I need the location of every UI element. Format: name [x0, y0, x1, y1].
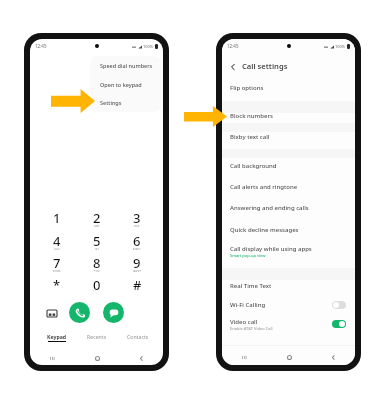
button[interactable]: Back — [119, 350, 163, 365]
button[interactable]: Call alerts and ringtone — [222, 179, 355, 195]
staticText: 8 — [93, 254, 101, 272]
staticText: 0 — [93, 276, 101, 294]
staticText: 100% — [143, 44, 154, 49]
button[interactable]: 4 — [44, 232, 70, 252]
button[interactable]: * — [44, 276, 70, 296]
staticText: 100% — [335, 44, 346, 49]
staticText: GHI — [54, 248, 60, 250]
staticText: + — [96, 292, 98, 294]
staticText: TUV — [94, 270, 100, 272]
button[interactable]: Contacts — [121, 333, 155, 347]
staticText: Quick decline messages — [230, 226, 299, 234]
button[interactable]: 3 — [124, 209, 150, 229]
button[interactable]: 2 — [84, 209, 110, 229]
button[interactable]: Video call — [332, 320, 346, 328]
staticText: WXYZ — [133, 270, 141, 272]
button[interactable]: Back — [311, 349, 355, 365]
staticText: 4 — [53, 232, 61, 250]
button[interactable]: Wi-Fi Calling — [222, 297, 355, 313]
button[interactable]: 1 — [44, 209, 70, 229]
button[interactable]: Keypad — [40, 333, 74, 347]
button[interactable]: Call display while using apps — [222, 243, 355, 259]
button[interactable]: 6 — [124, 232, 150, 252]
button[interactable]: Quick decline messages — [222, 222, 355, 238]
button[interactable]: Block numbers — [222, 108, 355, 124]
button[interactable]: Settings — [90, 93, 161, 111]
staticText: PQRS — [53, 270, 61, 272]
staticText: JKL — [95, 248, 100, 250]
staticText: Flip options — [230, 84, 264, 92]
staticText: Wi-Fi Calling — [230, 301, 266, 309]
staticText: Call alerts and ringtone — [230, 183, 298, 191]
button[interactable]: Real Time Text — [222, 278, 355, 294]
staticText: MNO — [133, 248, 141, 250]
button[interactable]: Call background — [222, 158, 355, 174]
button[interactable]: Recent apps — [30, 350, 75, 365]
button[interactable]: Speed dial numbers — [90, 56, 161, 74]
button[interactable]: Open to keypad — [90, 75, 161, 93]
staticText: Smart pop-up view — [230, 253, 266, 258]
button[interactable]: Video call — [47, 308, 57, 318]
staticText: DEF — [134, 225, 140, 227]
staticText: Recents — [87, 333, 107, 340]
staticText: Real Time Text — [230, 282, 272, 290]
staticText: Call background — [230, 162, 277, 170]
staticText: Block numbers — [230, 112, 273, 120]
button[interactable]: Recent apps — [222, 349, 267, 365]
button[interactable]: # — [124, 276, 150, 296]
button[interactable]: Answering and ending calls — [222, 200, 355, 216]
staticText: Contacts — [127, 333, 149, 340]
button[interactable]: 8 — [84, 254, 110, 274]
staticText: 9 — [133, 254, 141, 272]
staticText: 5 — [93, 232, 101, 250]
button[interactable]: Message — [103, 302, 124, 323]
button[interactable]: Video call — [222, 316, 355, 332]
button[interactable]: 0 — [84, 276, 110, 296]
staticText: Enable AT&T Video Call — [230, 326, 273, 331]
button[interactable]: Navigate up — [227, 61, 238, 72]
staticText: 1 — [53, 209, 61, 227]
button[interactable]: 7 — [44, 254, 70, 274]
staticText: Call settings — [242, 61, 288, 71]
button[interactable]: Recents — [80, 333, 114, 347]
staticText: Answering and ending calls — [230, 204, 309, 212]
staticText: # — [133, 276, 142, 294]
staticText: Open to keypad — [100, 81, 142, 88]
button[interactable]: 9 — [124, 254, 150, 274]
staticText: * — [53, 276, 61, 294]
staticText: 7 — [53, 254, 61, 272]
staticText: 2 — [93, 209, 101, 227]
staticText: ABC — [94, 225, 100, 227]
button[interactable]: Home — [267, 349, 311, 365]
button[interactable]: Call — [69, 302, 90, 323]
staticText: Bixby text call — [230, 133, 270, 141]
staticText: 12:45 — [35, 43, 47, 49]
staticText: Speed dial numbers — [100, 62, 153, 69]
button[interactable]: Home — [75, 350, 119, 365]
staticText: 6 — [133, 232, 141, 250]
button[interactable]: 5 — [84, 232, 110, 252]
staticText: Keypad — [47, 333, 67, 340]
staticText: 3 — [133, 209, 141, 227]
staticText: Call display while using apps — [230, 245, 312, 253]
staticText: Video call — [230, 318, 258, 326]
staticText: 12:45 — [227, 43, 239, 49]
staticText: Settings — [100, 99, 122, 106]
button[interactable]: Wi-Fi Calling — [332, 301, 346, 309]
button[interactable]: Bixby text call — [222, 129, 355, 145]
button[interactable]: Flip options — [222, 80, 355, 96]
